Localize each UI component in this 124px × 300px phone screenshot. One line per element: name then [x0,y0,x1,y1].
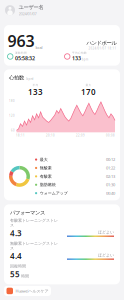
staticText: 最大 [40,157,48,162]
staticText: ユーザー名 [18,4,43,11]
staticText: 4.4 [10,251,22,261]
staticText: 00:12 [106,157,115,162]
staticText: ほどよい [98,230,114,234]
staticText: ハンドボール [86,40,116,46]
staticText: 回復時間 [10,264,26,269]
staticText: 00:40 [106,190,115,196]
staticText: (bpm) [25,77,33,81]
staticText: 22:09 [76,134,85,137]
button[interactable]: Huaweiヘルスケア [4,286,51,296]
staticText: 2024/01/07 18:11 [88,47,116,50]
staticText: 無酸素トレーニングストレス [10,241,58,251]
staticText: 01:22 [106,165,115,171]
staticText: ほどよい [98,253,114,257]
staticText: 運動時間 [15,51,27,55]
staticText: 00:08 [106,134,115,137]
staticText: 120 [9,114,15,117]
staticText: 有酸素トレーニングストレス [10,218,58,228]
staticText: 01:30 [106,182,115,187]
staticText: 心拍数 [9,74,24,81]
staticText: 平均心拍数 [72,51,87,55]
staticText: 2024/01/07 [18,11,36,16]
staticText: パフォーマンス [10,209,45,216]
staticText: ウォームアップ [40,191,68,196]
staticText: 133 [72,55,81,62]
staticText: 時間 [21,274,29,278]
staticText: kcal [35,45,42,50]
staticText: 20:10 [46,134,55,137]
staticText: 05:58:32 [15,55,35,62]
staticText: 180 [9,99,15,103]
staticText: 最大 [85,83,91,87]
staticText: bpm [82,58,88,61]
staticText: 有酸素 [40,174,52,179]
staticText: 55 [10,269,20,279]
staticText: 963 [7,30,34,51]
staticText: 133 [28,87,43,97]
staticText: 170 [81,87,96,97]
staticText: 4.3 [10,228,22,238]
staticText: 無酸素 [40,165,52,170]
staticText: 02:13 [106,174,115,179]
staticText: 脂肪燃焼 [40,182,56,187]
staticText: 60 [11,129,15,132]
staticText: 平均 [32,83,38,87]
staticText: 18:11 [16,134,25,137]
staticText: Huaweiヘルスケア [15,288,48,294]
